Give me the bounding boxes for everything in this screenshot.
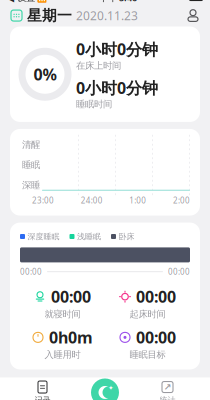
staticText: 浅睡眠 (77, 232, 101, 241)
staticText: 2:00 (173, 195, 190, 206)
staticText: 1:00 (129, 195, 146, 206)
staticText: 24:00 (81, 195, 103, 206)
button[interactable]: Start sleep tracking (90, 377, 120, 400)
staticText: ◀ 设置 (7, 0, 35, 3)
staticText: 0h0m (49, 327, 93, 348)
staticText: 0小时0分钟 (76, 77, 158, 98)
staticText: 深睡 (22, 179, 40, 191)
staticText: 睡眠目标 (129, 349, 165, 360)
button[interactable]: 记录 (0, 377, 85, 400)
staticText: 起床时间 (129, 308, 165, 320)
staticText: 00:00 (20, 266, 42, 277)
staticText: ↗ (163, 382, 171, 392)
staticText: 就寝时间 (44, 308, 80, 320)
staticText: 0小时0分钟 (76, 38, 158, 60)
staticText: 📶 (35, 0, 47, 3)
button[interactable]: 星期一 (10, 6, 138, 24)
staticText: 在床上时间 (76, 60, 121, 71)
staticText: 00:00 (136, 327, 176, 348)
staticText: 睡眠时间 (76, 98, 112, 110)
staticText: 2020.11.23 (76, 8, 138, 23)
staticText: 卧床 (118, 232, 134, 241)
staticText: 00:00 (51, 286, 91, 307)
staticText: 深度睡眠 (27, 232, 59, 241)
staticText: ✦ (108, 384, 114, 392)
staticText: 星期一 (27, 6, 72, 24)
staticText: 23:00 (32, 195, 54, 206)
button[interactable]: Profile (186, 8, 200, 22)
staticText: 记录 (34, 395, 50, 400)
button[interactable]: ↗ (125, 377, 210, 400)
staticText: 统计 (159, 395, 175, 400)
staticText: 下午 5:40 (99, 0, 137, 4)
staticText: 睡眠 (22, 159, 40, 171)
staticText: 00:00 (168, 266, 190, 277)
staticText: 入睡用时 (44, 349, 80, 360)
staticText: 0% (33, 64, 56, 85)
staticText: 00:00 (136, 286, 176, 307)
staticText: 清醒 (22, 139, 40, 150)
